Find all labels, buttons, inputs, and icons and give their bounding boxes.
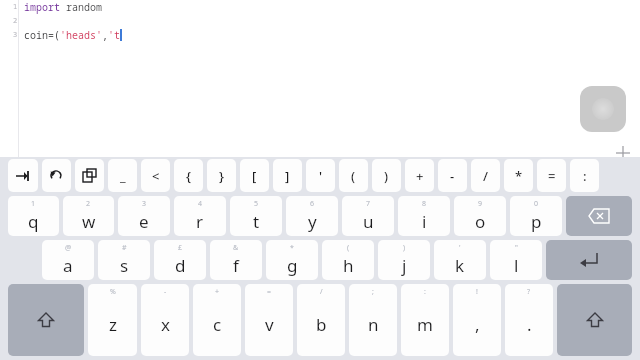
button[interactable]: * (266, 240, 318, 280)
button[interactable]: Tab (8, 159, 38, 192)
button[interactable]: / (297, 284, 345, 356)
button[interactable]: & (210, 240, 262, 280)
button[interactable]: Shift (8, 284, 84, 356)
staticText: 4 (198, 199, 203, 209)
button[interactable]: < (141, 159, 170, 192)
button[interactable]: / (471, 159, 500, 192)
staticText: = (548, 167, 556, 185)
button[interactable]: = (537, 159, 566, 192)
button[interactable]: @ (42, 240, 94, 280)
staticText: 9 (478, 199, 483, 209)
staticText: + (416, 167, 424, 185)
staticText: import random (24, 0, 102, 14)
staticText: 2 (13, 16, 18, 26)
button[interactable]: # (98, 240, 150, 280)
button[interactable]: % (88, 284, 137, 356)
staticText: " (515, 243, 518, 253)
staticText: ] (285, 167, 290, 185)
button[interactable]: " (490, 240, 542, 280)
staticText: n (368, 313, 379, 336)
staticText: + (215, 287, 220, 297)
staticText: a (63, 254, 73, 277)
staticText: ) (384, 167, 389, 185)
staticText: : (424, 287, 426, 297)
button[interactable]: : (401, 284, 449, 356)
button[interactable]: ( (339, 159, 368, 192)
button[interactable]: } (207, 159, 236, 192)
button[interactable]: * (504, 159, 533, 192)
button[interactable]: + (193, 284, 241, 356)
staticText: v (265, 313, 274, 336)
staticText: 3 (142, 199, 147, 209)
button[interactable]: Copy (75, 159, 104, 192)
staticText: _ (120, 167, 126, 185)
staticText: ( (347, 243, 350, 253)
button[interactable]: ( (322, 240, 374, 280)
staticText: i (422, 210, 427, 233)
staticText: , (475, 313, 480, 336)
button[interactable]: Undo (42, 159, 71, 192)
staticText: 0 (534, 199, 539, 209)
button[interactable]: 2 (63, 196, 114, 236)
staticText: ( (351, 167, 356, 185)
button[interactable]: Backspace (566, 196, 632, 236)
staticText: { (186, 167, 191, 185)
button[interactable]: 9 (454, 196, 506, 236)
button[interactable]: Enter (546, 240, 632, 280)
staticText: - (164, 287, 167, 297)
button[interactable]: Shift (557, 284, 632, 356)
button[interactable]: 3 (118, 196, 170, 236)
button[interactable]: ! (453, 284, 501, 356)
button[interactable]: 8 (398, 196, 450, 236)
staticText: 6 (310, 199, 315, 209)
button[interactable]: - (141, 284, 189, 356)
button[interactable]: 6 (286, 196, 338, 236)
staticText: * (515, 167, 523, 185)
button[interactable]: Run (580, 86, 626, 132)
staticText: [ (252, 167, 257, 185)
button[interactable]: = (245, 284, 293, 356)
button[interactable]: _ (108, 159, 137, 192)
staticText: 5 (254, 199, 259, 209)
button[interactable]: ? (505, 284, 553, 356)
staticText: ' (459, 243, 461, 253)
staticText: b (316, 313, 327, 336)
staticText: l (514, 254, 519, 277)
staticText: / (483, 167, 489, 185)
button[interactable]: 4 (174, 196, 226, 236)
button[interactable]: [ (240, 159, 269, 192)
staticText: t (253, 210, 260, 233)
staticText: coin=('heads','t (24, 28, 120, 42)
staticText: q (28, 210, 39, 233)
staticText: ; (372, 287, 374, 297)
staticText: o (475, 210, 486, 233)
button[interactable]: 7 (342, 196, 394, 236)
button[interactable]: { (174, 159, 203, 192)
staticText: z (109, 313, 117, 336)
staticText: 1 (13, 2, 18, 12)
staticText: w (82, 210, 96, 233)
button[interactable]: ] (273, 159, 302, 192)
staticText: u (363, 210, 374, 233)
staticText: @ (65, 243, 72, 253)
button[interactable]: 5 (230, 196, 282, 236)
button[interactable]: £ (154, 240, 206, 280)
button[interactable]: Add (612, 142, 634, 164)
button[interactable]: ' (306, 159, 335, 192)
staticText: . (527, 313, 532, 336)
button[interactable]: ' (434, 240, 486, 280)
staticText: r (196, 210, 204, 233)
button[interactable]: 0 (510, 196, 562, 236)
button[interactable]: ) (378, 240, 430, 280)
button[interactable]: - (438, 159, 467, 192)
staticText: ? (527, 287, 531, 297)
button[interactable]: ) (372, 159, 401, 192)
button[interactable]: + (405, 159, 434, 192)
staticText: h (343, 254, 354, 277)
staticText: m (417, 313, 433, 336)
staticText: : (583, 167, 587, 185)
button[interactable]: 1 (8, 196, 59, 236)
button[interactable]: : (570, 159, 599, 192)
button[interactable]: ; (349, 284, 397, 356)
staticText: = (267, 287, 272, 297)
